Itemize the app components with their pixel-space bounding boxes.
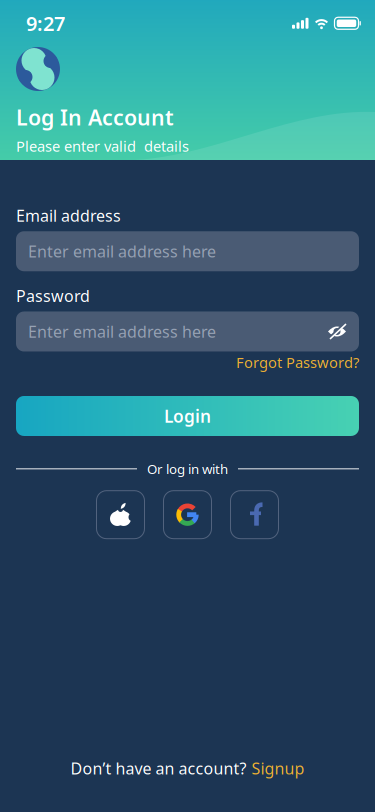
button[interactable]: Login [16, 396, 359, 436]
staticText: Signup [251, 758, 304, 779]
button[interactable]: Forgot Password? [236, 352, 359, 372]
button[interactable]: Show password [327, 323, 347, 339]
button[interactable]: Enter email address here [16, 311, 359, 351]
staticText: Forgot Password? [236, 352, 359, 372]
staticText: Login [164, 404, 211, 427]
button[interactable]: Signup [251, 758, 304, 779]
staticText: Or log in with [147, 460, 228, 478]
staticText: Password [16, 285, 90, 306]
staticText: Don’t have an account? [70, 758, 246, 779]
button[interactable]: Enter email address here [16, 231, 359, 271]
staticText: Enter email address here [28, 241, 216, 262]
staticText: 9:27 [26, 10, 65, 37]
button[interactable]: Log in with Apple [96, 491, 144, 539]
staticText: Enter email address here [28, 321, 216, 342]
button[interactable]: Log in with Facebook [230, 491, 278, 539]
staticText: Please enter valid details [16, 136, 189, 156]
staticText: Log In Account [16, 103, 174, 131]
staticText: Email address [16, 205, 121, 226]
button[interactable]: Log in with Google [163, 491, 211, 539]
